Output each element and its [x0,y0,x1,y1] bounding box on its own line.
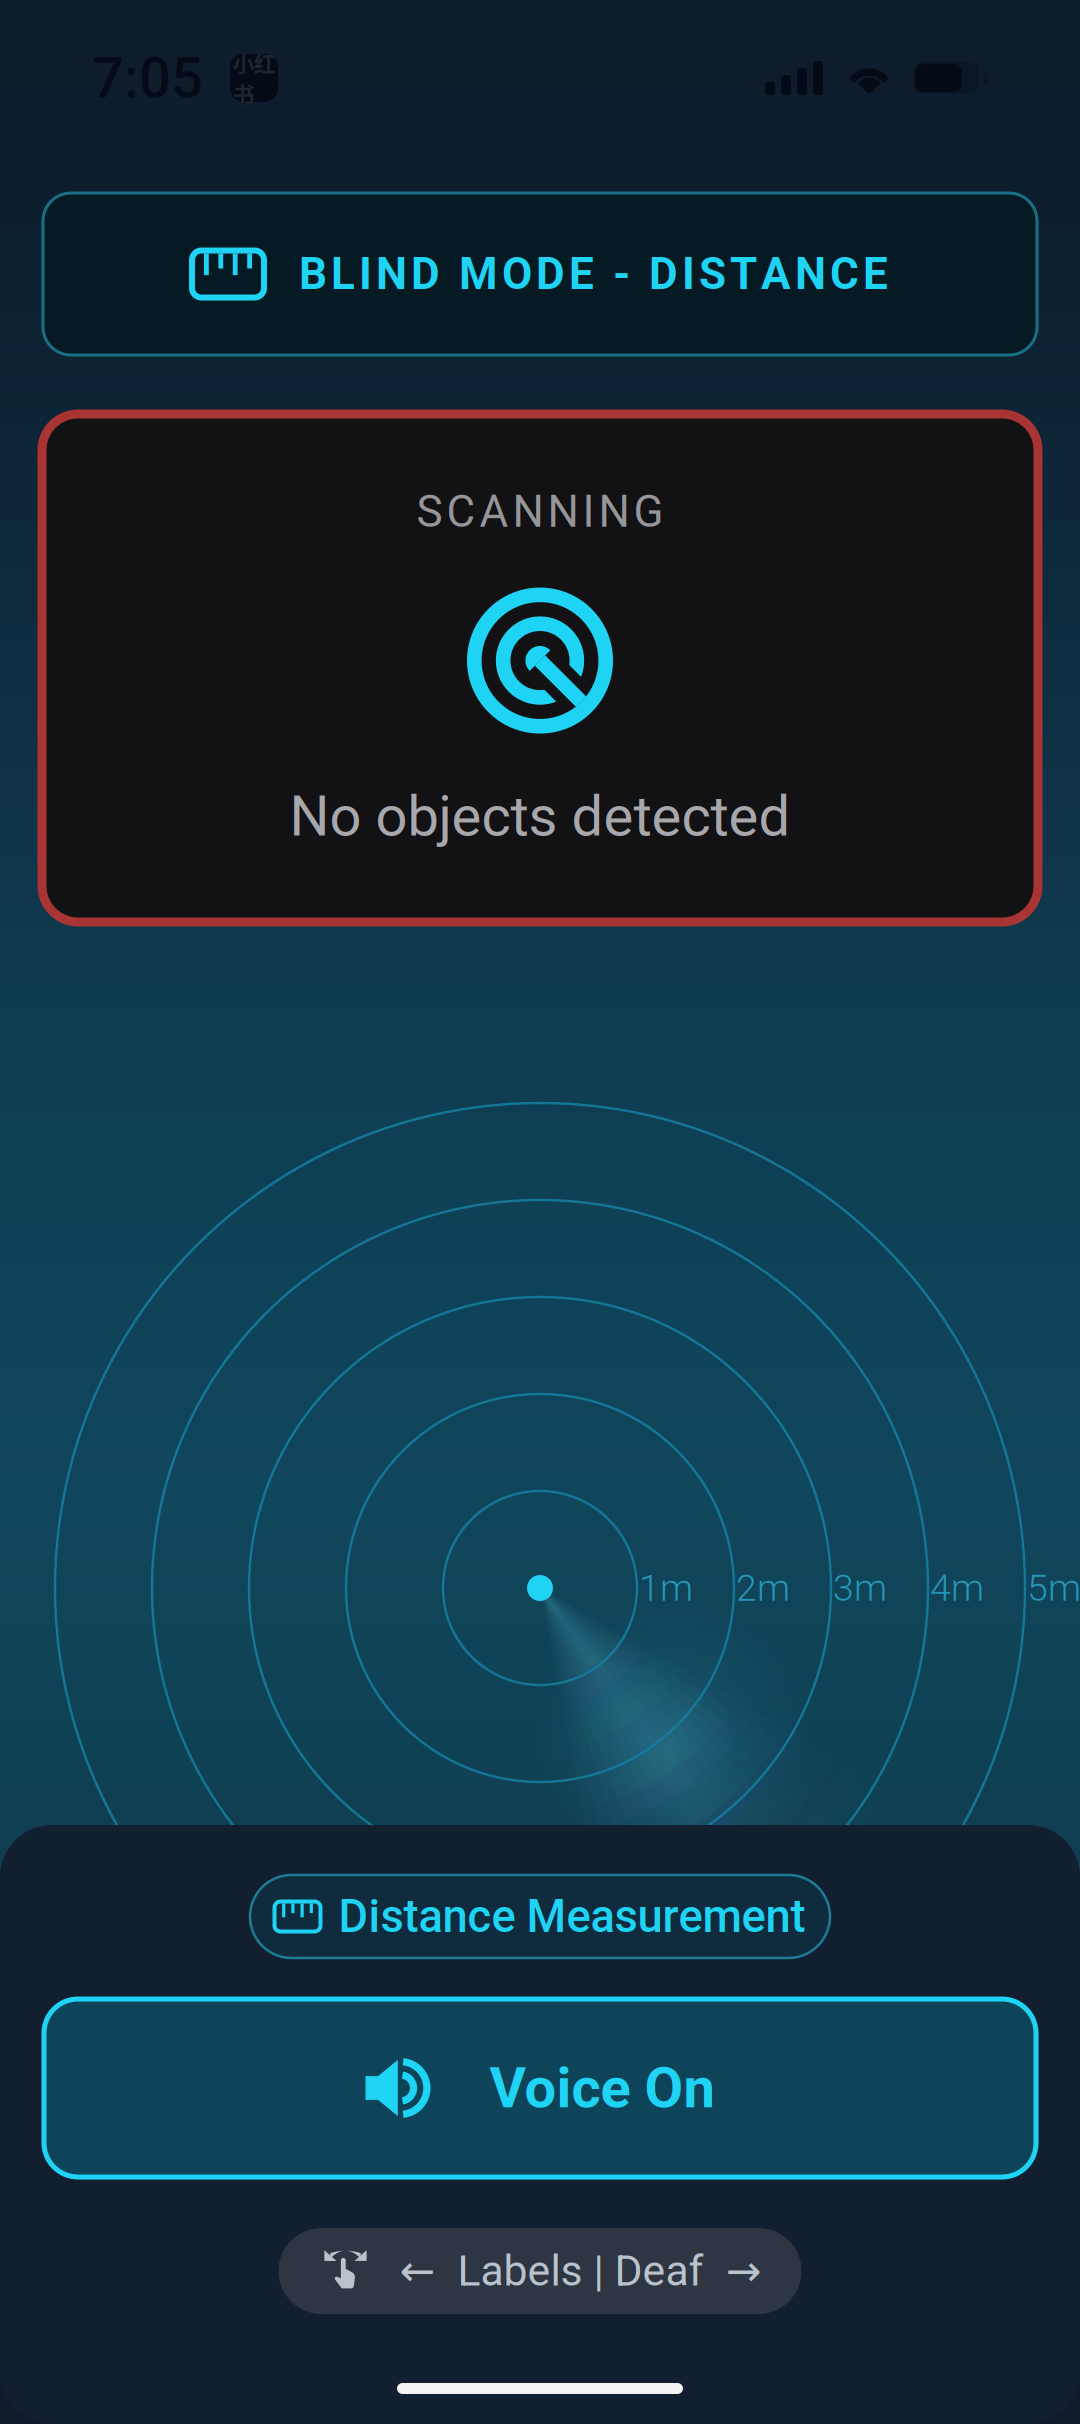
staticText: S C A N N I N G [416,486,663,538]
staticText: 3m [833,1566,887,1610]
staticText: No objects detected [289,784,790,849]
staticText: Distance Measurement [338,1890,805,1943]
staticText: Voice On [489,2055,714,2121]
staticText: B L I N D M O D E - D I S T A N C E [299,248,888,300]
staticText: 1m [639,1566,693,1610]
button[interactable]: Voice On [44,1999,1036,2177]
staticText: 4m [930,1566,984,1610]
button[interactable]: Distance Measurement [250,1875,830,1958]
staticText: 7:05 [92,45,203,111]
staticText: 小红书 [233,47,275,109]
staticText: 2m [736,1566,790,1610]
button[interactable]: B L I N D M O D E - D I S T A N C E [43,193,1037,355]
staticText: 5m [1027,1566,1080,1610]
button[interactable]: ← Labels | Deaf → [278,2228,801,2314]
staticText: ← Labels | Deaf → [399,2246,761,2296]
